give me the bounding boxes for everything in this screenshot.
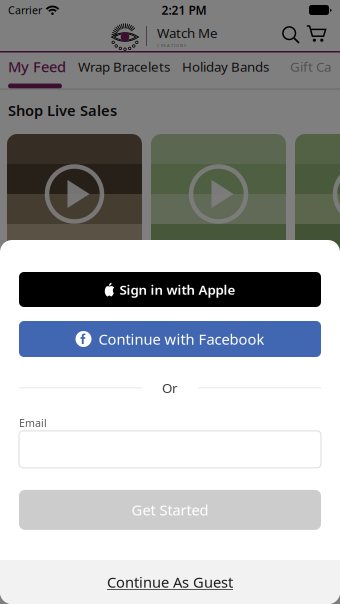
button[interactable]: Get Started <box>19 490 321 530</box>
staticText: Or <box>162 379 178 397</box>
staticText: C R E A T I O N S <box>157 43 186 48</box>
staticText: Continue As Guest <box>107 572 233 592</box>
staticText: Watch Me <box>157 24 218 42</box>
button[interactable]: Search <box>281 25 300 44</box>
staticText: Holiday Bands <box>182 58 269 75</box>
button[interactable]: Continue As Guest <box>0 560 340 604</box>
button[interactable]: Wrap Bracelets <box>78 55 174 77</box>
button[interactable]: Continue with Facebook <box>19 321 321 357</box>
staticText: Continue with Facebook <box>98 329 264 349</box>
staticText: Shop Live Sales <box>8 100 117 120</box>
staticText: Email <box>19 416 47 430</box>
staticText: Gift Ca <box>290 58 331 75</box>
button[interactable]: Gift Ca <box>290 55 340 77</box>
button[interactable]: Cart <box>306 25 327 43</box>
staticText: Sign in with Apple <box>119 281 235 298</box>
staticText: 2:21 PM <box>161 2 206 18</box>
staticText: Carrier <box>8 3 42 17</box>
staticText: My Feed <box>8 57 66 76</box>
button[interactable]: My Feed <box>8 55 68 88</box>
staticText: Get Started <box>131 500 208 520</box>
button[interactable]: Holiday Bands <box>182 55 272 77</box>
button[interactable]: Sign in with Apple <box>19 272 321 307</box>
staticText: Wrap Bracelets <box>78 58 170 75</box>
